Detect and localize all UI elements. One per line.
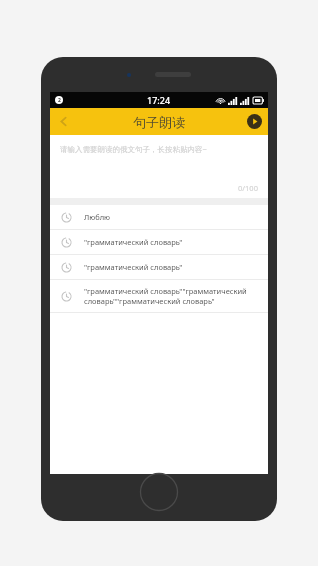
staticText: "грамматический словарь"	[84, 237, 257, 247]
staticText: 17:24	[147, 94, 171, 106]
button[interactable]: Люблю	[50, 205, 268, 229]
button[interactable]: Play	[247, 114, 262, 129]
staticText: 2	[58, 97, 61, 104]
staticText: 0/100	[238, 183, 258, 193]
button[interactable]: "грамматический словарь"	[50, 230, 268, 254]
staticText: 请输入需要朗读的俄文句子，长按粘贴内容~	[60, 144, 207, 154]
button[interactable]: Back	[50, 108, 77, 135]
staticText: "грамматический словарь"	[84, 262, 257, 272]
button[interactable]: 请输入需要朗读的俄文句子，长按粘贴内容~	[50, 135, 268, 198]
button[interactable]: "грамматический словарь""грамматический …	[50, 280, 268, 312]
staticText: 句子朗读	[133, 114, 185, 130]
staticText: Люблю	[84, 212, 257, 222]
button[interactable]: "грамматический словарь"	[50, 255, 268, 279]
staticText: "грамматический словарь""грамматический …	[84, 286, 257, 306]
